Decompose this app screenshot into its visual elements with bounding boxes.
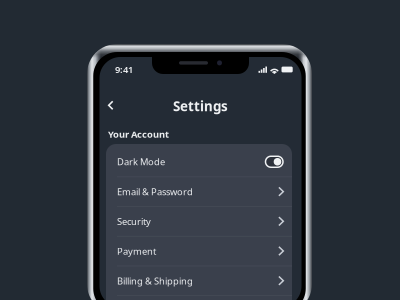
button[interactable]: Billing & Shipping: [106, 266, 292, 295]
staticText: Settings: [173, 97, 228, 115]
staticText: Billing & Shipping: [117, 275, 193, 287]
button[interactable]: Payment: [106, 237, 292, 266]
staticText: Your Account: [108, 128, 169, 140]
staticText: Dark Mode: [117, 156, 165, 168]
staticText: 9:41: [115, 63, 133, 76]
button[interactable]: Dark Mode: [106, 144, 292, 176]
button[interactable]: Email & Password: [106, 177, 292, 206]
button[interactable]: Security: [106, 207, 292, 236]
staticText: Payment: [117, 245, 156, 257]
button[interactable]: Back: [101, 95, 121, 115]
staticText: Security: [117, 215, 151, 228]
staticText: Email & Password: [117, 185, 193, 198]
